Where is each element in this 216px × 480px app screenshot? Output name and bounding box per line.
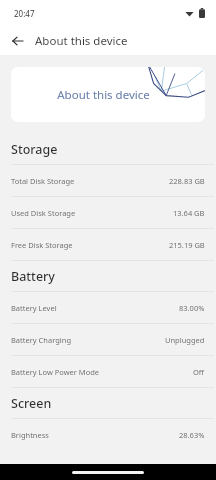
button[interactable]: Brightness (0, 419, 216, 450)
staticText: Free Disk Storage (11, 240, 73, 250)
staticText: Total Disk Storage (11, 176, 75, 186)
button[interactable]: Battery Level (0, 292, 216, 323)
button[interactable]: About this device (11, 67, 205, 122)
button[interactable]: Battery Charging (0, 324, 216, 355)
staticText: Battery (11, 268, 55, 285)
staticText: 28.63% (179, 430, 205, 440)
staticText: 13.64 GB (173, 208, 205, 218)
staticText: Battery Level (11, 303, 57, 313)
staticText: 20:47 (14, 8, 35, 19)
button[interactable]: Free Disk Storage (0, 229, 216, 260)
staticText: Battery Charging (11, 335, 71, 345)
button[interactable]: Battery Low Power Mode (0, 356, 216, 387)
staticText: Unplugged (165, 335, 205, 345)
staticText: About this device (57, 87, 150, 103)
staticText: Off (193, 367, 205, 377)
staticText: 228.83 GB (169, 176, 205, 186)
staticText: Storage (11, 141, 58, 158)
button[interactable]: Back (6, 29, 30, 53)
staticText: Battery Low Power Mode (11, 367, 100, 377)
staticText: 83.00% (179, 303, 205, 313)
staticText: Brightness (11, 430, 49, 440)
staticText: 215.19 GB (169, 240, 205, 250)
staticText: Screen (11, 395, 52, 412)
staticText: Used Disk Storage (11, 208, 76, 218)
button[interactable]: Total Disk Storage (0, 165, 216, 196)
button[interactable]: Used Disk Storage (0, 197, 216, 228)
staticText: About this device (35, 33, 128, 49)
